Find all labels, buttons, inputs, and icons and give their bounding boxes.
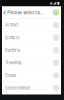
staticText: Please select a... <box>7 10 43 15</box>
button[interactable]: Traveling <box>2 57 61 69</box>
button[interactable]: Bacteria <box>2 44 61 57</box>
staticText: Traveling <box>5 60 22 65</box>
button[interactable]: Please select a... <box>2 6 61 19</box>
button[interactable]: Sedimentrock <box>2 82 61 94</box>
staticText: Artifact <box>5 22 18 27</box>
staticText: Bacteria <box>5 48 20 53</box>
button[interactable]: Screw <box>2 69 61 82</box>
staticText: Sedimentrock <box>5 85 30 90</box>
staticText: Ecofarm <box>5 35 20 40</box>
button[interactable]: Artifact <box>2 19 61 31</box>
button[interactable]: Ecofarm <box>2 31 61 44</box>
staticText: Screw <box>5 73 16 78</box>
